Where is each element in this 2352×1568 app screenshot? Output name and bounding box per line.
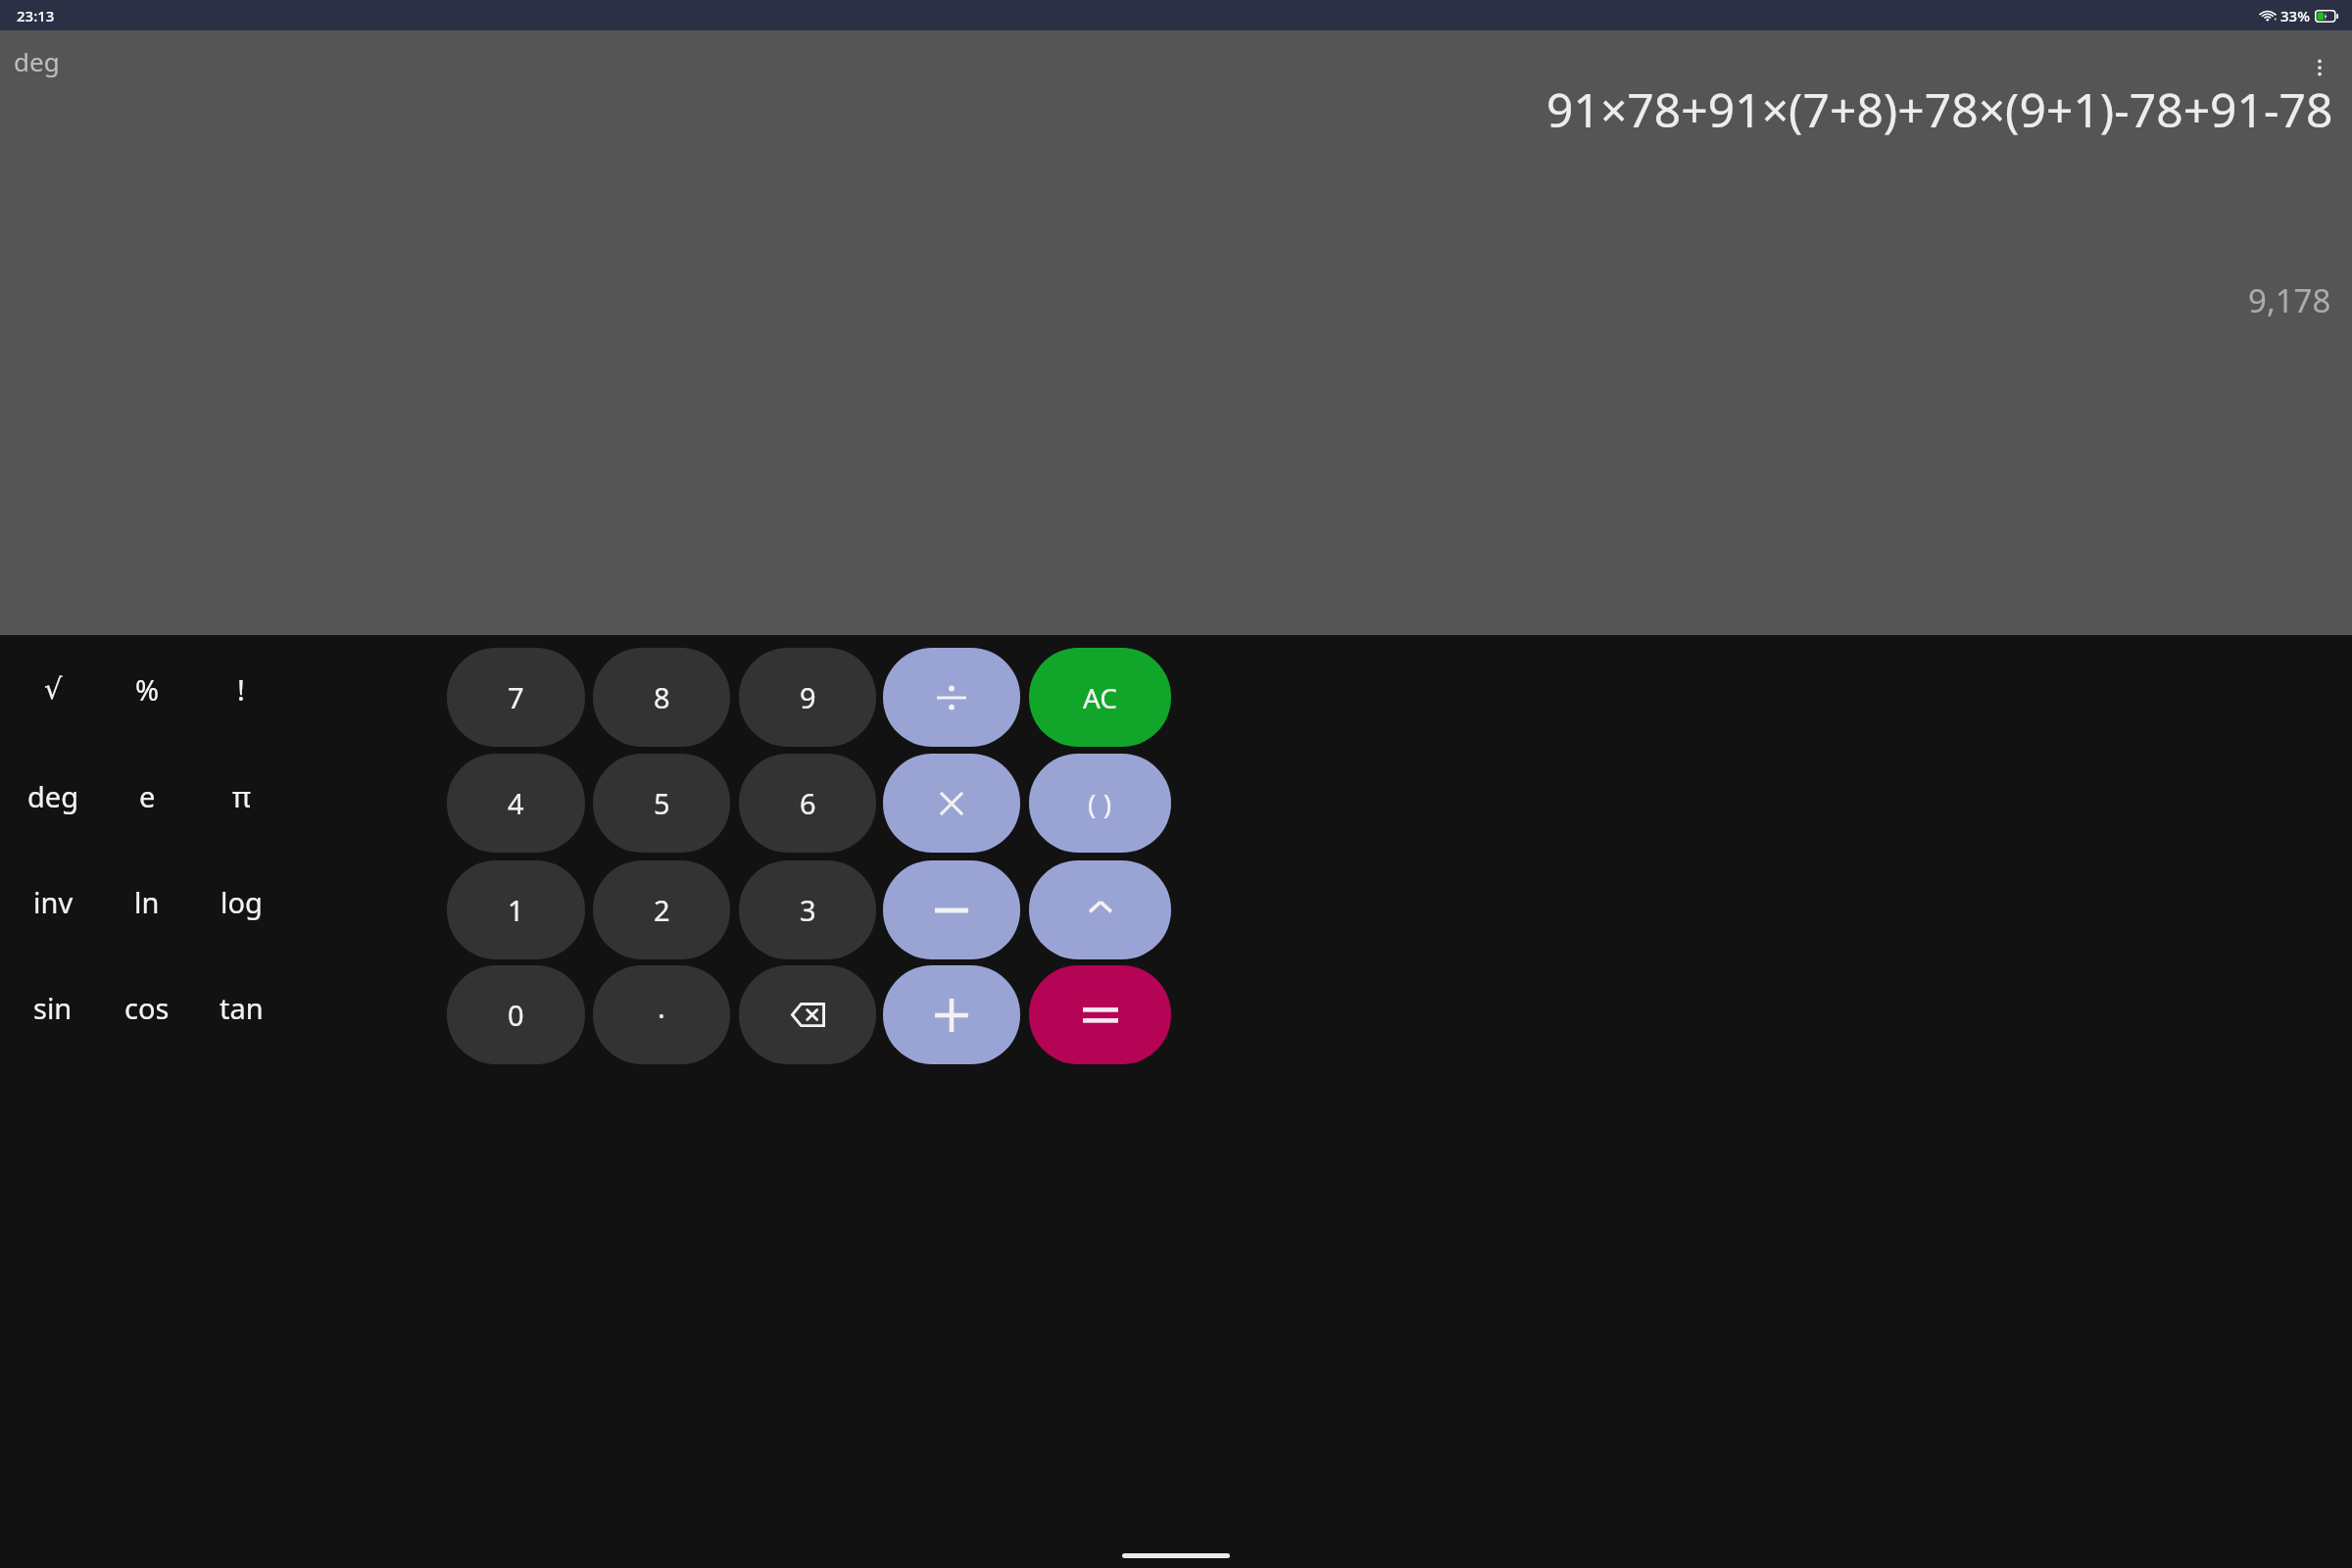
button[interactable]: 0 xyxy=(447,965,585,1064)
staticText: 9 xyxy=(800,678,816,716)
staticText: 1 xyxy=(508,891,524,929)
button[interactable]: Divide xyxy=(883,648,1020,747)
button[interactable]: 6 xyxy=(739,754,876,853)
button[interactable]: 3 xyxy=(739,860,876,959)
button[interactable]: ! xyxy=(197,640,285,738)
staticText: % xyxy=(135,670,160,709)
staticText: π xyxy=(232,777,251,815)
button[interactable]: tan xyxy=(197,958,285,1056)
button[interactable]: Equals xyxy=(1029,965,1171,1064)
staticText: 23:13 xyxy=(17,6,55,25)
staticText: 7 xyxy=(508,678,524,716)
button[interactable]: 2 xyxy=(593,860,730,959)
staticText: 33% xyxy=(2280,6,2310,25)
staticText: ln xyxy=(134,883,160,921)
staticText: √ xyxy=(44,672,63,706)
button[interactable]: ln xyxy=(103,853,191,951)
staticText: tan xyxy=(220,989,264,1027)
button[interactable]: 7 xyxy=(447,648,585,747)
button[interactable]: cos xyxy=(103,958,191,1056)
button[interactable]: Subtract xyxy=(883,860,1020,959)
button[interactable]: π xyxy=(197,747,285,845)
button[interactable]: deg xyxy=(9,747,97,845)
staticText: 9,178 xyxy=(2248,278,2331,322)
staticText: 2 xyxy=(654,891,670,929)
staticText: ( ) xyxy=(1088,785,1112,822)
staticText: deg xyxy=(14,44,60,78)
staticText: 91×78+91×(7+8)+78×(9+1)-78+91-78 xyxy=(1546,77,2333,141)
button[interactable]: Backspace xyxy=(739,965,876,1064)
button[interactable]: ( ) xyxy=(1029,754,1171,853)
staticText: 6 xyxy=(800,784,816,822)
button[interactable]: 1 xyxy=(447,860,585,959)
button[interactable]: Decimal point xyxy=(593,965,730,1064)
button[interactable]: sin xyxy=(9,958,97,1056)
staticText: inv xyxy=(33,883,73,921)
button[interactable]: 9 xyxy=(739,648,876,747)
staticText: 0 xyxy=(508,996,524,1034)
button[interactable]: 5 xyxy=(593,754,730,853)
staticText: 3 xyxy=(800,891,816,929)
staticText: e xyxy=(139,777,156,815)
button[interactable]: Add xyxy=(883,965,1020,1064)
staticText: ! xyxy=(237,670,245,709)
staticText: 4 xyxy=(508,784,524,822)
button[interactable]: 8 xyxy=(593,648,730,747)
button[interactable]: More options xyxy=(2300,48,2339,87)
button[interactable]: √ xyxy=(9,640,97,738)
button[interactable]: e xyxy=(103,747,191,845)
button[interactable]: Power xyxy=(1029,860,1171,959)
button[interactable]: log xyxy=(197,853,285,951)
staticText: log xyxy=(220,883,263,921)
staticText: 8 xyxy=(654,678,670,716)
button[interactable]: inv xyxy=(9,853,97,951)
staticText: sin xyxy=(33,989,73,1027)
button[interactable]: Multiply xyxy=(883,754,1020,853)
button[interactable]: AC xyxy=(1029,648,1171,747)
staticText: AC xyxy=(1083,679,1118,716)
staticText: cos xyxy=(124,989,170,1027)
button[interactable]: % xyxy=(103,640,191,738)
staticText: deg xyxy=(27,777,79,815)
staticText: · xyxy=(658,996,665,1034)
staticText: 5 xyxy=(654,784,670,822)
button[interactable]: 4 xyxy=(447,754,585,853)
